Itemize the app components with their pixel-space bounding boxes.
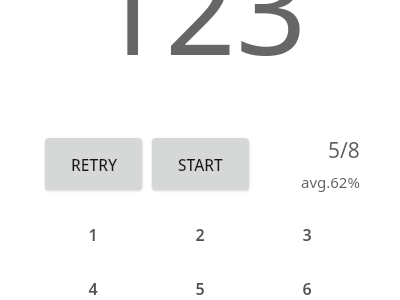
staticText: START — [178, 154, 223, 175]
button[interactable]: 2 — [146, 224, 253, 246]
staticText: 6 — [302, 278, 312, 300]
staticText: RETRY — [71, 154, 117, 175]
staticText: 5/8 — [328, 136, 360, 165]
button[interactable]: RETRY — [45, 138, 142, 190]
button[interactable]: 4 — [40, 278, 146, 300]
button[interactable]: 5 — [146, 278, 253, 300]
staticText: 123 — [94, 0, 307, 91]
staticText: 4 — [88, 278, 98, 300]
staticText: 5 — [195, 278, 205, 300]
button[interactable]: 6 — [253, 278, 360, 300]
button[interactable]: 1 — [40, 224, 146, 246]
staticText: 1 — [88, 224, 98, 246]
staticText: 3 — [302, 224, 312, 246]
staticText: 2 — [195, 224, 205, 246]
button[interactable]: 3 — [253, 224, 360, 246]
staticText: avg.62% — [301, 172, 360, 192]
button[interactable]: START — [152, 138, 249, 190]
